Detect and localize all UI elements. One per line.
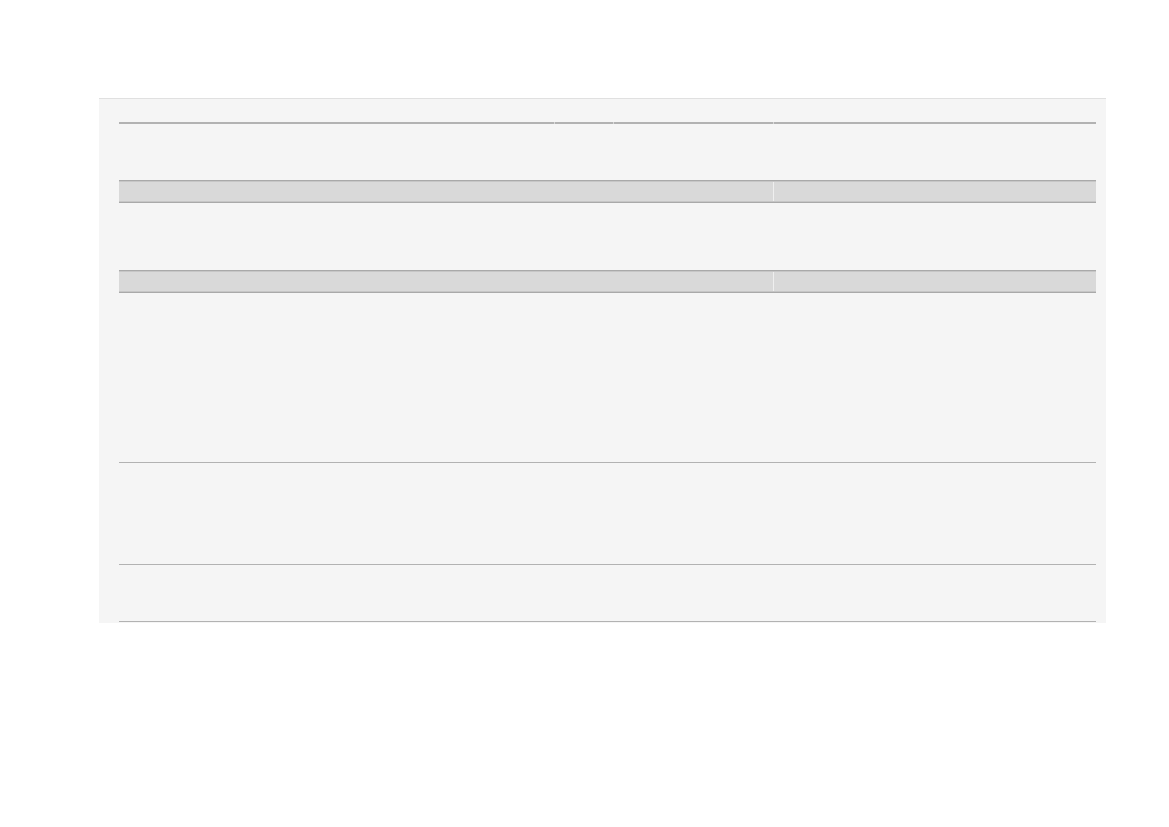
button[interactable]: Row 2, selected [119, 180, 1096, 203]
button[interactable]: Row 4, selected [119, 270, 1096, 293]
